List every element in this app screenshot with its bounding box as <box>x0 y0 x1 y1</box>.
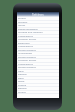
button[interactable]: Notifications <box>17 45 59 49</box>
staticText: Screen timeout <box>18 48 36 51</box>
button[interactable]: Help <box>17 70 59 73</box>
button[interactable]: Security <box>17 21 59 24</box>
button[interactable]: Backup <box>17 73 59 77</box>
button[interactable]: Notifications <box>17 63 59 66</box>
button[interactable]: Screen timeout <box>17 49 59 52</box>
staticText: Backup <box>18 72 27 75</box>
staticText: Sound <box>18 16 26 19</box>
staticText: Location access <box>18 58 37 61</box>
staticText: Backup <box>18 86 27 89</box>
staticText: Notifications <box>18 44 33 47</box>
staticText: Screen timeout <box>18 65 36 68</box>
button[interactable]: Reset <box>17 80 59 84</box>
staticText: Storage and memory <box>18 30 43 33</box>
staticText: Help <box>18 69 24 72</box>
button[interactable]: Screen timeout <box>17 66 59 70</box>
button[interactable]: Date <box>17 77 59 80</box>
button[interactable]: Storage and memory <box>17 31 59 35</box>
button[interactable]: Location access <box>17 59 59 63</box>
button[interactable]: Location access <box>17 38 59 42</box>
staticText: Bluetooth <box>18 41 30 44</box>
staticText: About <box>18 23 26 26</box>
staticText: Settings <box>32 13 44 17</box>
staticText: Theme <box>18 83 27 86</box>
button[interactable]: Digital wellbeing <box>17 28 59 31</box>
staticText: Security <box>18 20 28 23</box>
staticText: Location access <box>18 37 37 40</box>
staticText: Accessibility <box>18 51 33 54</box>
button[interactable]: Backup <box>17 87 59 91</box>
button[interactable]: Settings <box>17 12 59 17</box>
staticText: Date <box>18 76 24 79</box>
staticText: Screen timeout <box>18 55 36 58</box>
staticText: Digital wellbeing <box>18 27 38 30</box>
staticText: Notifications <box>18 62 33 65</box>
button[interactable]: Notifications <box>17 35 59 38</box>
button[interactable]: About <box>17 24 59 28</box>
button[interactable]: Theme <box>17 84 59 87</box>
button[interactable]: Screen timeout <box>17 56 59 59</box>
button[interactable]: Bluetooth <box>17 42 59 45</box>
button[interactable]: Sound <box>17 91 59 94</box>
button[interactable]: Sound <box>17 17 59 21</box>
staticText: Sound <box>18 90 26 93</box>
staticText: Notifications <box>18 34 33 37</box>
button[interactable]: Accessibility <box>17 52 59 56</box>
staticText: Reset <box>18 79 25 82</box>
